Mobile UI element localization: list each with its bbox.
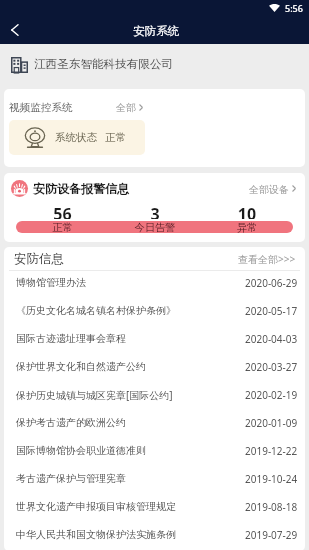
staticText: 2020-01-09 <box>245 416 298 430</box>
staticText: 全部 <box>116 101 136 114</box>
staticText: 系统状态 <box>55 131 97 144</box>
staticText: 2020-06-29 <box>245 276 298 290</box>
staticText: 正常 <box>16 221 109 233</box>
staticText: 2020-05-17 <box>245 304 298 318</box>
button[interactable]: 查看全部>>> <box>236 249 298 269</box>
staticText: 3 <box>109 203 201 219</box>
button[interactable]: 全部 <box>114 99 145 116</box>
staticText: 2019-10-24 <box>245 472 298 486</box>
staticText: 全部设备 <box>249 183 289 194</box>
button[interactable]: Back <box>0 18 28 42</box>
button[interactable]: 博物馆管理办法 <box>4 271 305 299</box>
button[interactable]: 《历史文化名城名镇名村保护条例》 <box>4 299 305 327</box>
staticText: 今日告警 <box>109 221 201 233</box>
staticText: 《历史文化名城名镇名村保护条例》 <box>16 304 176 317</box>
staticText: 安防设备报警信息 <box>33 181 129 196</box>
staticText: 保护历史城镇与城区宪章[国际公约] <box>16 388 173 402</box>
staticText: 保护世界文化和自然遗产公约 <box>16 360 146 373</box>
staticText: 安防系统 <box>133 24 180 39</box>
staticText: 保护考古遗产的欧洲公约 <box>16 416 126 429</box>
staticText: 5:56 <box>285 2 303 14</box>
staticText: 56 <box>16 203 109 219</box>
button[interactable]: 中华人民共和国文物保护法实施条例 <box>4 523 305 550</box>
staticText: 2020-02-19 <box>245 388 298 402</box>
staticText: 2019-07-29 <box>245 528 298 542</box>
staticText: 安防信息 <box>14 251 64 267</box>
button[interactable]: 国际古迹遗址理事会章程 <box>4 327 305 355</box>
button[interactable]: 全部设备 <box>247 180 298 197</box>
staticText: 2019-12-22 <box>245 444 298 458</box>
button[interactable]: 考古遗产保护与管理宪章 <box>4 467 305 495</box>
staticText: 世界文化遗产申报项目审核管理规定 <box>16 500 176 513</box>
staticText: 中华人民共和国文物保护法实施条例 <box>16 528 176 541</box>
button[interactable]: 保护历史城镇与城区宪章[国际公约] <box>4 383 305 411</box>
staticText: 国际博物馆协会职业道德准则 <box>16 444 146 457</box>
staticText: 视频监控系统 <box>9 101 73 114</box>
button[interactable]: 保护世界文化和自然遗产公约 <box>4 355 305 383</box>
button[interactable]: 世界文化遗产申报项目审核管理规定 <box>4 495 305 523</box>
button[interactable]: 系统状态 <box>9 120 145 155</box>
staticText: 2019-08-18 <box>245 500 298 514</box>
button[interactable]: 保护考古遗产的欧洲公约 <box>4 411 305 439</box>
staticText: 10 <box>201 203 293 219</box>
staticText: 考古遗产保护与管理宪章 <box>16 472 126 485</box>
staticText: 正常 <box>105 131 126 144</box>
button[interactable]: 国际博物馆协会职业道德准则 <box>4 439 305 467</box>
staticText: 2020-03-27 <box>245 360 298 374</box>
staticText: 博物馆管理办法 <box>16 276 86 289</box>
staticText: 2020-04-03 <box>245 332 298 346</box>
staticText: 国际古迹遗址理事会章程 <box>16 332 126 345</box>
staticText: 异常 <box>201 221 293 233</box>
staticText: 江西圣东智能科技有限公司 <box>34 57 174 72</box>
